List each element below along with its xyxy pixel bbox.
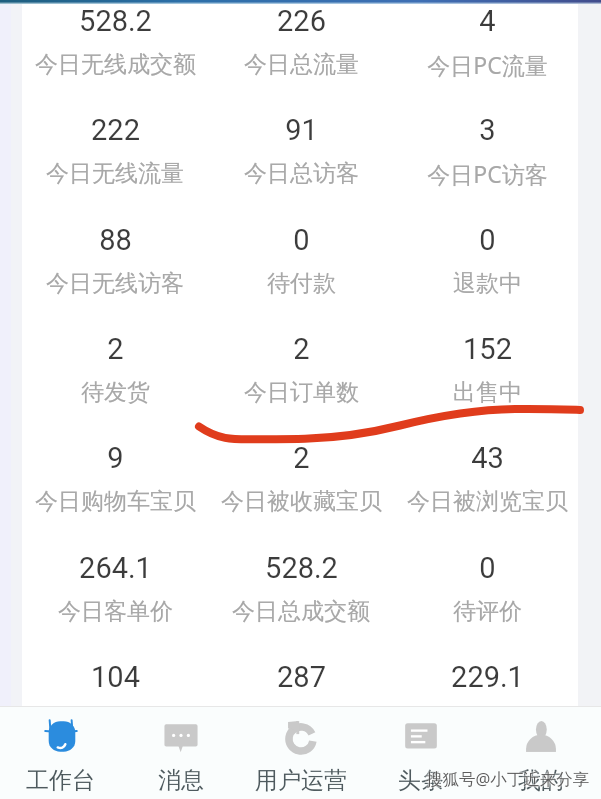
staticText: 消息 xyxy=(158,766,204,795)
staticText: 搜狐号@小丁近来分享 xyxy=(425,766,589,789)
staticText: 2 xyxy=(293,441,310,475)
staticText: 264.1 xyxy=(79,551,152,585)
staticText: 搜狐号@小丁近来分享 xyxy=(426,766,590,789)
staticText: 2 xyxy=(107,332,124,366)
staticText: 今日PC访客 xyxy=(427,158,548,189)
button[interactable]: 264.1 xyxy=(22,550,208,650)
staticText: 91 xyxy=(285,113,318,147)
staticText: 4 xyxy=(479,4,496,38)
staticText: 今日被收藏宝贝 xyxy=(221,487,382,516)
staticText: 出售中 xyxy=(453,378,522,407)
button[interactable]: 9 xyxy=(22,440,208,540)
staticText: 头条 xyxy=(398,766,444,795)
staticText: 今日退款额 xyxy=(430,706,545,735)
staticText: 528.2 xyxy=(265,551,338,585)
staticText: 今日PC流量 xyxy=(427,49,548,80)
button[interactable]: 287 xyxy=(208,659,394,759)
button[interactable]: 222 xyxy=(22,112,208,212)
staticText: 搜狐号@小丁近来分享 xyxy=(427,767,591,790)
staticText: 搜狐号@小丁近来分享 xyxy=(427,768,591,791)
staticText: 退款中 xyxy=(453,269,522,298)
staticText: 今日被浏览宝贝 xyxy=(407,487,568,516)
button[interactable]: 头条 xyxy=(361,707,481,799)
staticText: 今日无线流量 xyxy=(46,159,184,188)
button[interactable]: 528.2 xyxy=(22,3,208,103)
staticText: 今日无线访客 xyxy=(46,269,184,298)
staticText: 今日总流量 xyxy=(244,50,359,79)
button[interactable]: 91 xyxy=(208,112,394,212)
staticText: 搜狐号@小丁近来分享 xyxy=(426,768,590,791)
staticText: 用户运营 xyxy=(255,766,347,795)
staticText: 待付款 xyxy=(267,269,336,298)
button[interactable]: 43 xyxy=(394,440,580,540)
staticText: 今日支付买家数 xyxy=(221,706,382,735)
staticText: 88 xyxy=(99,223,132,257)
staticText: 今日成交转化率 xyxy=(35,706,196,735)
staticText: 今日购物车宝贝 xyxy=(35,487,196,516)
button[interactable]: 528.2 xyxy=(208,550,394,650)
staticText: 229.1 xyxy=(451,660,524,694)
staticText: 工作台 xyxy=(26,766,95,795)
button[interactable]: 4 xyxy=(394,3,580,103)
staticText: 9 xyxy=(107,441,124,475)
button[interactable]: 消息 xyxy=(121,707,241,799)
staticText: 我的 xyxy=(518,766,564,795)
staticText: 搜狐号@小丁近来分享 xyxy=(425,768,589,791)
staticText: 152 xyxy=(463,332,512,366)
button[interactable]: 用户运营 xyxy=(241,707,361,799)
button[interactable]: 工作台 xyxy=(0,707,121,799)
button[interactable]: 3 xyxy=(394,112,580,212)
staticText: 待评价 xyxy=(453,597,522,626)
staticText: 搜狐号@小丁近来分享 xyxy=(427,766,591,789)
button[interactable]: 0 xyxy=(208,222,394,322)
button[interactable]: 2 xyxy=(22,331,208,431)
button[interactable]: 2 xyxy=(208,440,394,540)
staticText: 0 xyxy=(293,223,310,257)
staticText: 0 xyxy=(479,223,496,257)
staticText: 搜狐号@小丁近来分享 xyxy=(426,767,590,790)
staticText: 2 xyxy=(293,332,310,366)
staticText: 搜狐号@小丁近来分享 xyxy=(425,767,589,790)
button[interactable]: 104 xyxy=(22,659,208,759)
staticText: 3 xyxy=(479,113,496,147)
staticText: 今日总成交额 xyxy=(232,597,370,626)
staticText: 待发货 xyxy=(81,378,150,407)
button[interactable]: 0 xyxy=(394,222,580,322)
staticText: 528.2 xyxy=(79,4,152,38)
staticText: 今日无线成交额 xyxy=(35,50,196,79)
staticText: 287 xyxy=(277,660,326,694)
button[interactable]: 152 xyxy=(394,331,580,431)
staticText: 0 xyxy=(479,551,496,585)
staticText: 104 xyxy=(91,660,140,694)
button[interactable]: 2 xyxy=(208,331,394,431)
staticText: 43 xyxy=(471,441,504,475)
staticText: 今日客单价 xyxy=(58,597,173,626)
staticText: 今日总访客 xyxy=(244,159,359,188)
staticText: 今日订单数 xyxy=(244,378,359,407)
staticText: 222 xyxy=(91,113,140,147)
button[interactable]: 我的 xyxy=(481,707,601,799)
button[interactable]: 0 xyxy=(394,550,580,650)
button[interactable]: 229.1 xyxy=(394,659,580,759)
button[interactable]: 88 xyxy=(22,222,208,322)
button[interactable]: 226 xyxy=(208,3,394,103)
staticText: 226 xyxy=(277,4,326,38)
